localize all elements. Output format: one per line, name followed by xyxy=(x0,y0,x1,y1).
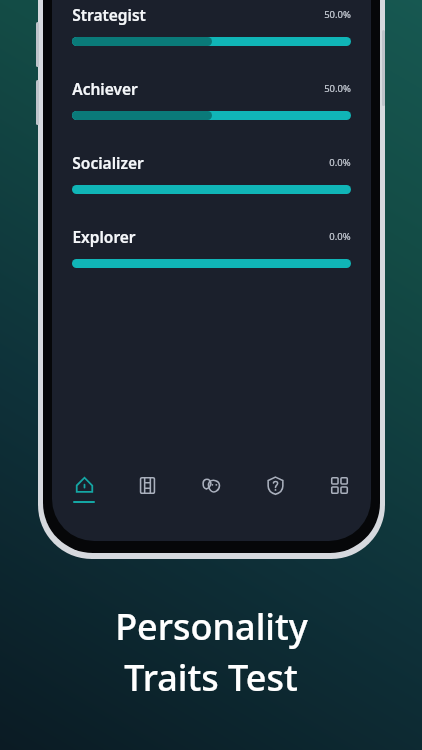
staticText: 50.0% xyxy=(324,82,351,95)
staticText: Explorer xyxy=(72,226,136,247)
staticText: 0.0% xyxy=(329,156,351,169)
staticText: 0.0% xyxy=(329,230,351,243)
staticText: Strategist xyxy=(72,4,146,25)
button[interactable]: Movies xyxy=(115,463,179,515)
staticText: Personality xyxy=(115,602,308,651)
button[interactable]: Quiz xyxy=(243,463,307,515)
staticText: 50.0% xyxy=(324,8,351,21)
button[interactable]: Drama xyxy=(179,463,243,515)
button[interactable]: More xyxy=(307,463,371,515)
staticText: Traits Test xyxy=(124,653,298,702)
button[interactable]: Home xyxy=(52,463,115,515)
staticText: Socializer xyxy=(72,152,144,173)
staticText: Achiever xyxy=(72,78,138,99)
